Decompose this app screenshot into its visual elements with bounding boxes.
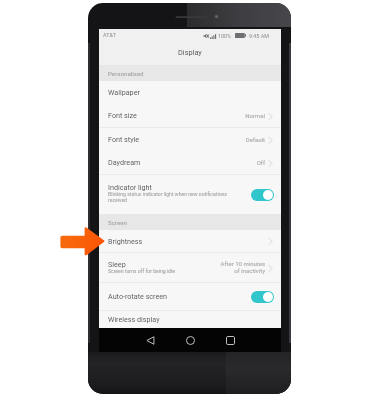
staticText: 9:45 AM (249, 33, 269, 39)
button[interactable]: Brightness (99, 230, 281, 253)
staticText: AT&T (103, 32, 116, 38)
staticText: Font style (108, 135, 140, 143)
staticText: Off (256, 159, 265, 166)
button[interactable]: Wallpaper (99, 81, 281, 105)
staticText: Display (178, 48, 202, 57)
staticText: of inactivity (234, 267, 265, 274)
staticText: Blinking status indicator light when new… (108, 191, 245, 204)
button[interactable]: Daydream (99, 151, 281, 175)
staticText: After 10 minutes (220, 260, 265, 267)
button[interactable]: Sleep (99, 253, 281, 283)
button[interactable]: Font size (99, 104, 281, 128)
staticText: Brightness (108, 237, 143, 245)
staticText: Auto-rotate screen (108, 292, 168, 300)
button[interactable]: Auto-rotate screen (99, 283, 281, 311)
button[interactable]: Font style (99, 128, 281, 152)
staticText: Personalized (108, 70, 144, 77)
button[interactable]: Recent apps (220, 332, 240, 348)
staticText: 100% (218, 33, 232, 39)
staticText: Wallpaper (108, 88, 140, 96)
button[interactable]: Callout arrow pointing to Brightness (58, 224, 108, 259)
staticText: Normal (245, 112, 265, 119)
staticText: Daydream (108, 158, 141, 166)
staticText: Screen (108, 219, 127, 226)
staticText: Screen turns off for being idle (108, 268, 175, 274)
staticText: Default (245, 136, 265, 143)
button[interactable]: Indicator light (99, 175, 281, 214)
staticText: Sleep (108, 260, 126, 268)
button[interactable]: Back (140, 332, 160, 348)
staticText: Indicator light (108, 183, 152, 191)
staticText: Font size (108, 111, 137, 119)
button[interactable]: Wireless display (99, 311, 281, 328)
button[interactable]: Home (180, 332, 200, 348)
button[interactable]: Toggle Indicator light (251, 189, 274, 201)
button[interactable]: Toggle Auto-rotate screen (251, 291, 274, 303)
staticText: Wireless display (108, 315, 160, 323)
